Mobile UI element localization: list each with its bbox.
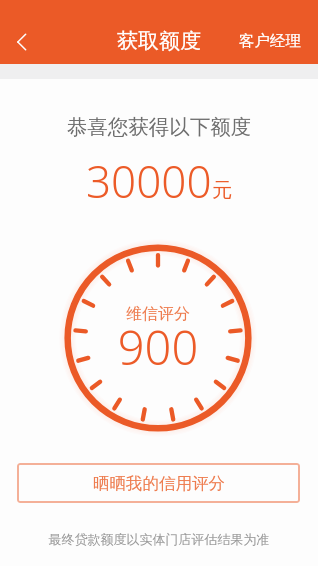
button[interactable]: 客户经理 [222,19,318,63]
button[interactable]: Back [0,19,46,65]
staticText: 维信评分 [64,304,252,324]
staticText: 客户经理 [239,31,301,51]
staticText: 900 [64,315,252,379]
staticText: 最终贷款额度以实体门店评估结果为准 [0,531,318,547]
staticText: 恭喜您获得以下额度 [0,114,318,140]
button[interactable]: 晒晒我的信用评分 [17,463,300,503]
staticText: 晒晒我的信用评分 [93,473,225,494]
staticText: 获取额度 [117,28,201,54]
staticText: 元 [212,178,232,203]
staticText: 30000 [86,151,212,211]
